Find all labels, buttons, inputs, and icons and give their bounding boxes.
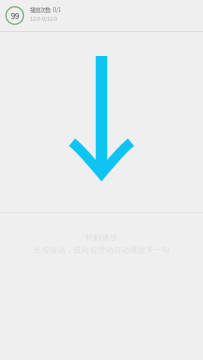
staticText: 播放次数: 0/1 — [30, 6, 61, 14]
staticText: 长按说话，或向右滑动自动播放下一句 — [33, 245, 169, 255]
staticText: 99 — [11, 10, 19, 21]
staticText: 轻触播放 — [85, 232, 117, 242]
staticText: 12.0-0/12.0 — [30, 15, 57, 22]
